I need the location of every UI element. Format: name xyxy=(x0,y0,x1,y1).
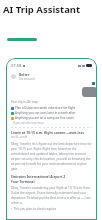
staticText: AI Trip Assistant xyxy=(3,3,81,16)
staticText: • This you plan to check regular xyxy=(11,207,56,211)
staticText: world—could xyxy=(11,135,28,139)
staticText: Emirates International Airport 2 Four Te… xyxy=(11,174,66,184)
staticText: Anything you can uses later in a week af… xyxy=(15,111,76,115)
button[interactable] xyxy=(82,87,97,97)
staticText: Plan a Dubai one-week adventure for flig… xyxy=(15,106,76,110)
staticText: Bot assistant xyxy=(19,77,35,81)
staticText: 07:58 xyxy=(11,63,22,68)
staticText: Anything you are on a camp we fine route xyxy=(15,116,74,120)
staticText: Bolter xyxy=(19,72,30,77)
staticText: Okay, Traveler considering your flight a… xyxy=(11,186,92,205)
button[interactable]: Bolter xyxy=(11,72,92,81)
staticText: If you can also save steps xyxy=(11,121,44,125)
staticText: Your trip in 24h map xyxy=(11,100,38,104)
staticText: Okay, Traveler, let's figure out the bes… xyxy=(11,142,92,171)
staticText: Leave at 10:15 a.m. flight sooner—wait-l… xyxy=(11,130,84,135)
